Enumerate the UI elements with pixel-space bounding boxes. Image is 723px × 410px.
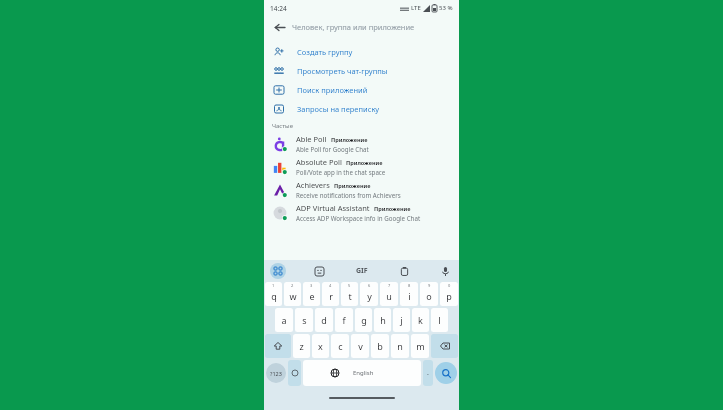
button[interactable]: s <box>295 308 313 332</box>
button[interactable]: n <box>391 334 409 358</box>
button[interactable]: d <box>315 308 333 332</box>
button[interactable]: h <box>374 308 391 332</box>
button[interactable]: 6 <box>360 282 378 306</box>
staticText: j <box>400 314 403 326</box>
staticText: Access ADP Workspace info in Google Chat <box>296 214 421 222</box>
staticText: p <box>446 290 452 302</box>
button[interactable]: . <box>423 360 433 386</box>
button[interactable]: Clipboard <box>396 263 412 279</box>
button[interactable]: z <box>293 334 310 358</box>
staticText: c <box>338 340 343 352</box>
button[interactable]: ADP Virtual Assistant <box>264 201 459 224</box>
button[interactable]: Back <box>270 18 288 36</box>
button[interactable]: Voice input <box>437 263 453 279</box>
button[interactable]: x <box>312 334 329 358</box>
staticText: n <box>397 340 403 352</box>
button[interactable]: 3 <box>303 282 320 306</box>
staticText: k <box>418 314 423 326</box>
button[interactable]: 2 <box>284 282 301 306</box>
staticText: b <box>377 340 383 352</box>
staticText: h <box>380 314 386 326</box>
button[interactable]: Absolute Poll <box>264 155 459 178</box>
staticText: i <box>408 290 411 302</box>
staticText: 53 % <box>439 4 453 12</box>
staticText: Просмотреть чат-группы <box>297 66 388 76</box>
button[interactable]: 9 <box>420 282 438 306</box>
staticText: Запросы на переписку <box>297 104 380 114</box>
staticText: 4 <box>329 283 332 288</box>
staticText: LTE <box>411 4 421 12</box>
button[interactable]: Key <box>265 334 291 358</box>
staticText: Поиск приложений <box>297 85 368 95</box>
staticText: Achievers <box>296 180 330 190</box>
staticText: q <box>271 290 277 302</box>
staticText: ?123 <box>270 370 282 377</box>
staticText: Создать группу <box>297 47 353 57</box>
staticText: Absolute Poll <box>296 157 342 167</box>
button[interactable]: f <box>335 308 353 332</box>
button[interactable]: l <box>431 308 448 332</box>
button[interactable]: Запросы на переписку <box>264 99 459 118</box>
button[interactable]: j <box>393 308 410 332</box>
staticText: f <box>342 314 346 326</box>
button[interactable]: 1 <box>265 282 282 306</box>
staticText: 14:24 <box>270 4 287 13</box>
staticText: a <box>281 314 287 326</box>
staticText: w <box>289 290 297 302</box>
staticText: s <box>302 314 307 326</box>
staticText: 2 <box>291 283 294 288</box>
staticText: e <box>309 290 315 302</box>
staticText: 1 <box>272 283 275 288</box>
staticText: 7 <box>388 283 391 288</box>
staticText: o <box>426 290 432 302</box>
button[interactable]: Key <box>431 334 458 358</box>
staticText: r <box>329 290 333 302</box>
button[interactable]: Search <box>435 362 457 384</box>
button[interactable]: m <box>411 334 429 358</box>
staticText: Able Poll for Google Chat <box>296 145 369 153</box>
staticText: Приложение <box>331 136 368 143</box>
staticText: z <box>299 340 304 352</box>
button[interactable]: k <box>412 308 429 332</box>
staticText: l <box>438 314 441 326</box>
staticText: ADP Virtual Assistant <box>296 203 370 213</box>
button[interactable]: 5 <box>341 282 358 306</box>
staticText: Receive notifications from Achievers <box>296 191 401 199</box>
button[interactable]: Поиск приложений <box>264 80 459 99</box>
button[interactable]: 0 <box>440 282 458 306</box>
staticText: m <box>416 340 425 352</box>
button[interactable]: g <box>355 308 372 332</box>
button[interactable]: Able Poll <box>264 132 459 155</box>
button[interactable]: Emoji <box>288 360 301 386</box>
button[interactable]: v <box>351 334 369 358</box>
button[interactable]: Sticker <box>311 263 327 279</box>
button[interactable]: English <box>303 360 421 386</box>
staticText: GIF <box>356 266 368 276</box>
staticText: Человек, группа или приложение <box>292 22 415 32</box>
button[interactable]: c <box>331 334 349 358</box>
button[interactable]: GIF <box>352 261 372 281</box>
staticText: 8 <box>408 283 411 288</box>
staticText: English <box>353 369 374 377</box>
staticText: y <box>367 290 372 302</box>
staticText: Приложение <box>334 182 371 189</box>
staticText: Приложение <box>346 159 383 166</box>
button[interactable]: ?123 <box>266 363 286 383</box>
staticText: . <box>427 368 429 378</box>
staticText: Частые <box>272 122 293 130</box>
button[interactable]: Просмотреть чат-группы <box>264 61 459 80</box>
button[interactable]: b <box>371 334 389 358</box>
staticText: Приложение <box>374 205 411 212</box>
staticText: x <box>318 340 323 352</box>
staticText: v <box>358 340 363 352</box>
button[interactable]: Apps <box>270 263 286 279</box>
button[interactable]: Создать группу <box>264 42 459 61</box>
staticText: 5 <box>348 283 351 288</box>
button[interactable]: Человек, группа или приложение <box>292 16 451 38</box>
button[interactable]: Achievers <box>264 178 459 201</box>
button[interactable]: 8 <box>400 282 418 306</box>
staticText: d <box>321 314 327 326</box>
button[interactable]: 4 <box>322 282 339 306</box>
button[interactable]: a <box>275 308 293 332</box>
button[interactable]: 7 <box>380 282 398 306</box>
